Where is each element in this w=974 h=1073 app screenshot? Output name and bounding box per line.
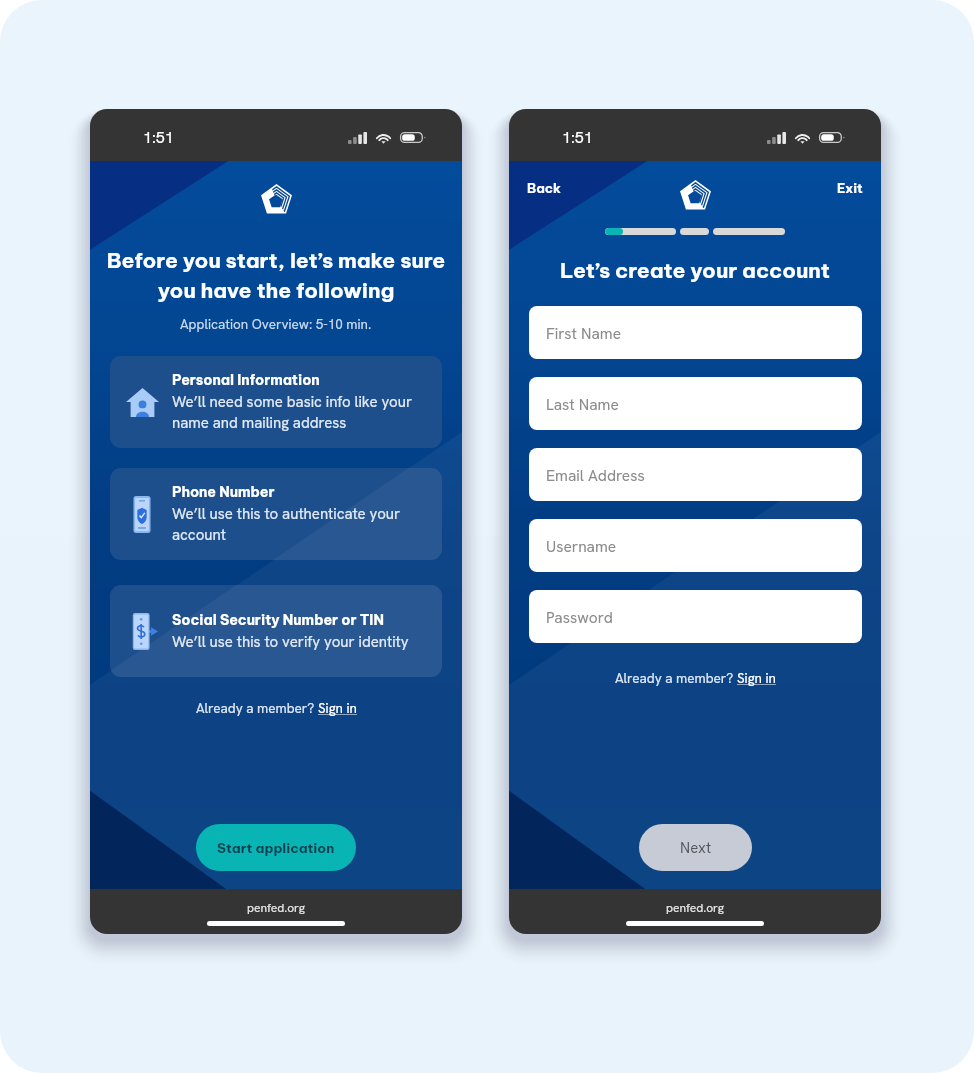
button[interactable]: Password xyxy=(529,590,862,643)
staticText: First Name xyxy=(546,323,622,343)
staticText: Sign in xyxy=(318,699,357,717)
staticText: Email Address xyxy=(546,465,645,485)
staticText: Application Overview: 5-10 min. xyxy=(180,315,372,333)
staticText: Start application xyxy=(217,839,335,856)
button[interactable]: Social Security Number or TIN xyxy=(110,585,442,677)
button[interactable]: Email Address xyxy=(529,448,862,501)
button[interactable]: Last Name xyxy=(529,377,862,430)
staticText: Username xyxy=(546,536,617,556)
staticText: 1:51 xyxy=(143,127,174,148)
button[interactable]: Next xyxy=(639,824,752,871)
button[interactable]: Exit xyxy=(829,172,871,204)
staticText: Let’s create your account xyxy=(560,257,830,284)
staticText: Social Security Number or TIN xyxy=(172,611,384,629)
button[interactable]: Start application xyxy=(196,824,356,871)
button[interactable]: Personal Information xyxy=(110,356,442,448)
staticText: Password xyxy=(546,607,613,627)
button[interactable]: Username xyxy=(529,519,862,572)
staticText: Before you start, let’s make sure you ha… xyxy=(106,247,446,303)
staticText: Exit xyxy=(837,180,863,196)
staticText: Sign in xyxy=(737,669,776,687)
staticText: We’ll need some basic info like your nam… xyxy=(172,392,413,433)
staticText: penfed.org xyxy=(247,900,305,916)
staticText: We’ll use this to authenticate your acco… xyxy=(172,504,401,545)
staticText: 1:51 xyxy=(562,127,593,148)
staticText: Phone Number xyxy=(172,483,275,501)
staticText: Already a member? xyxy=(196,699,318,717)
staticText: Back xyxy=(527,180,561,196)
staticText: Last Name xyxy=(546,394,619,414)
staticText: We’ll use this to verify your identity xyxy=(172,632,409,652)
button[interactable]: Already a member? xyxy=(196,699,357,717)
button[interactable]: Phone Number xyxy=(110,468,442,560)
staticText: Next xyxy=(680,838,712,858)
staticText: Already a member? xyxy=(615,669,737,687)
button[interactable]: First Name xyxy=(529,306,862,359)
staticText: Personal Information xyxy=(172,371,320,389)
button[interactable]: Back xyxy=(519,172,569,204)
button[interactable]: Already a member? xyxy=(615,669,776,687)
staticText: penfed.org xyxy=(666,900,724,916)
